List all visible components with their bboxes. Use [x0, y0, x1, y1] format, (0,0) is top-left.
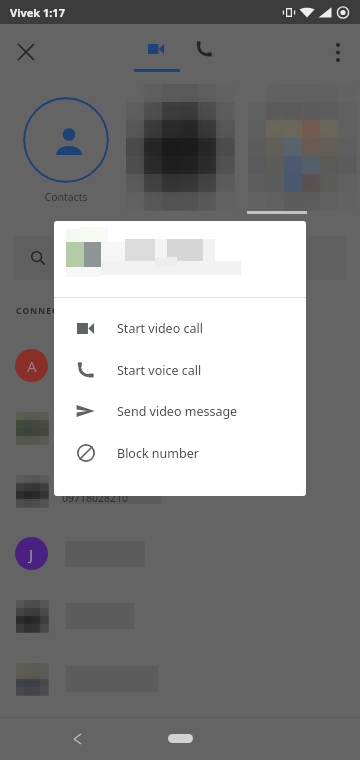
staticText: Send video message — [117, 403, 238, 420]
staticText: Vivek 1:17 — [10, 5, 65, 20]
staticText: Block number — [117, 445, 199, 462]
button[interactable]: Voice call tab — [180, 24, 228, 74]
button[interactable] — [0, 396, 360, 459]
button[interactable] — [0, 459, 360, 522]
staticText: Start video call — [117, 320, 203, 337]
button[interactable]: More options — [316, 30, 360, 74]
button[interactable]: Back — [62, 729, 94, 749]
staticText: A — [27, 356, 37, 376]
button[interactable] — [0, 647, 360, 710]
staticText: 09718028210 — [62, 491, 129, 505]
button[interactable]: Close — [4, 30, 48, 74]
staticText: CONNECT WITH — [16, 305, 96, 317]
button[interactable]: Start voice call — [54, 349, 306, 391]
button[interactable]: A — [0, 334, 360, 397]
button[interactable]: Start video call — [54, 307, 306, 349]
staticText: Contacts — [23, 190, 109, 204]
button[interactable] — [0, 584, 360, 647]
button[interactable] — [23, 97, 109, 183]
button[interactable]: Video call tab — [128, 24, 184, 74]
button[interactable]: Home — [168, 734, 193, 743]
button[interactable] — [14, 236, 346, 280]
staticText: Start voice call — [117, 362, 202, 379]
button[interactable]: Send video message — [54, 390, 306, 432]
button[interactable]: Block number — [54, 432, 306, 474]
button[interactable]: J — [0, 522, 360, 585]
staticText: J — [29, 544, 34, 564]
